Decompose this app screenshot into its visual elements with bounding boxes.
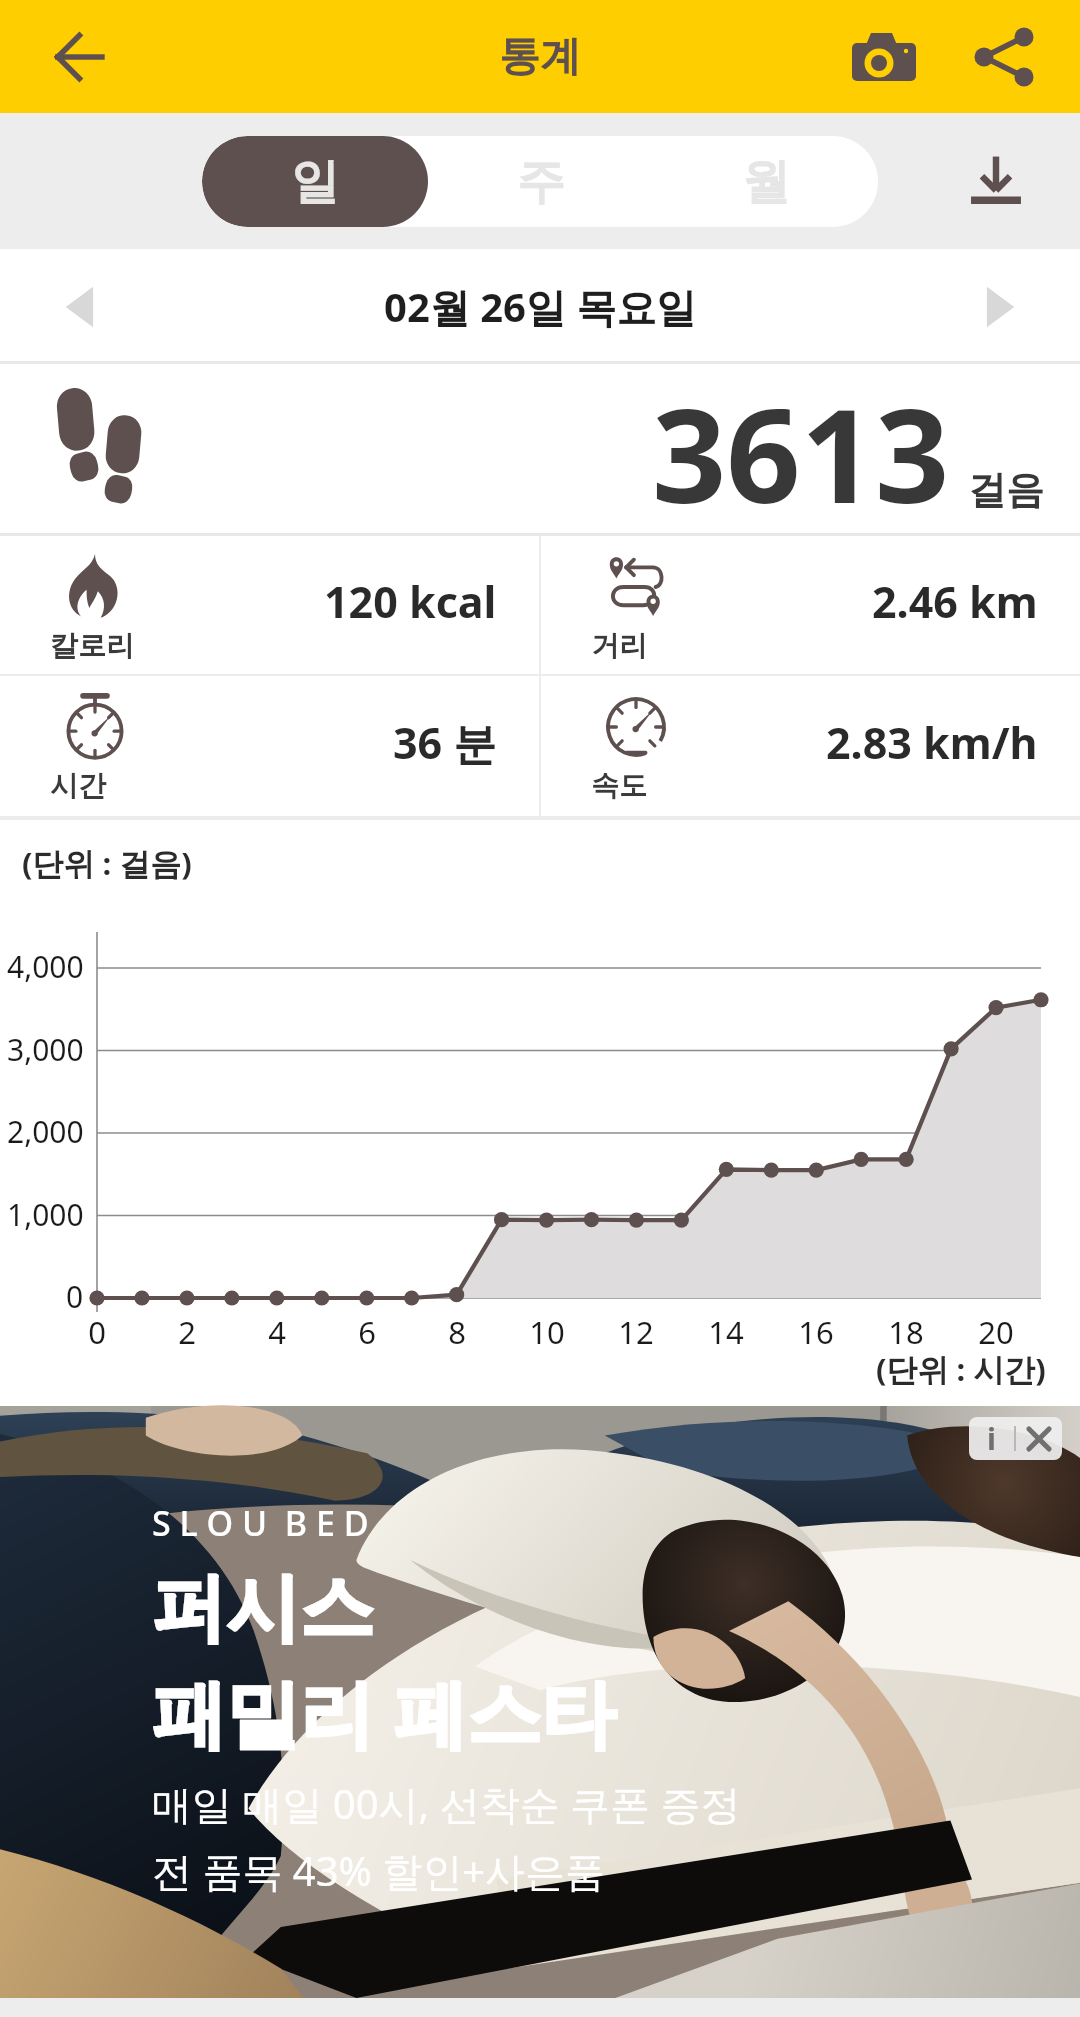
staticText: 0: [67, 1311, 127, 1353]
staticText: 6: [337, 1311, 397, 1353]
staticText: 시간: [50, 768, 106, 803]
staticText: 18: [876, 1311, 936, 1353]
button[interactable]: Previous day: [42, 272, 112, 342]
button[interactable]: 주: [428, 136, 653, 227]
button[interactable]: Camera: [834, 7, 934, 107]
staticText: 2: [157, 1311, 217, 1353]
staticText: 속도: [591, 768, 647, 803]
staticText: 퍼시스: [152, 1562, 374, 1655]
button[interactable]: 일: [202, 136, 428, 227]
button[interactable]: 속도: [541, 676, 1080, 816]
staticText: 통계: [499, 31, 581, 83]
staticText: 02월 26일 목요일: [384, 279, 697, 334]
staticText: 2.83 km/h: [826, 713, 1038, 772]
staticText: 14: [696, 1311, 756, 1353]
staticText: 3613: [652, 364, 950, 536]
button[interactable]: 시간: [0, 676, 539, 816]
button[interactable]: 월: [653, 136, 878, 227]
staticText: 16: [786, 1311, 846, 1353]
staticText: 걸음: [968, 466, 1044, 514]
staticText: (단위 : 걸음): [22, 842, 192, 884]
staticText: (단위 : 시간): [876, 1348, 1046, 1390]
staticText: 3,000: [7, 1029, 84, 1070]
staticText: 칼로리: [50, 628, 134, 663]
button[interactable]: Share: [954, 7, 1054, 107]
staticText: 월: [742, 152, 790, 212]
staticText: S L O U B E D: [152, 1500, 369, 1546]
staticText: 4,000: [7, 946, 84, 987]
button[interactable]: Close ad: [1016, 1417, 1062, 1460]
staticText: 전 품목 43% 할인+사은품: [152, 1843, 606, 1898]
staticText: 일: [291, 152, 339, 212]
button[interactable]: Download: [944, 129, 1048, 233]
staticText: 매일 매일 00시, 선착순 쿠폰 증정: [152, 1776, 741, 1831]
staticText: 4: [247, 1311, 307, 1353]
staticText: 패밀리 페스타: [152, 1661, 616, 1762]
staticText: 120 kcal: [324, 572, 497, 631]
staticText: 10: [517, 1311, 577, 1353]
staticText: i: [987, 1418, 996, 1459]
button[interactable]: Ad info: [969, 1417, 1014, 1460]
button[interactable]: Back: [38, 12, 128, 102]
staticText: 12: [606, 1311, 666, 1353]
staticText: 8: [427, 1311, 487, 1353]
staticText: 20: [966, 1311, 1026, 1353]
button[interactable]: S L O U B E D: [0, 1406, 1080, 1998]
staticText: 2.46 km: [872, 572, 1038, 631]
staticText: 1,000: [7, 1194, 84, 1235]
button[interactable]: 거리: [541, 536, 1080, 674]
staticText: 0: [66, 1276, 84, 1317]
staticText: 주: [517, 152, 565, 212]
staticText: 36 분: [393, 713, 497, 772]
button[interactable]: Next day: [968, 272, 1038, 342]
button[interactable]: 칼로리: [0, 536, 539, 674]
staticText: 2,000: [7, 1111, 84, 1152]
staticText: 거리: [591, 628, 647, 663]
button[interactable]: 3613: [0, 364, 1080, 536]
